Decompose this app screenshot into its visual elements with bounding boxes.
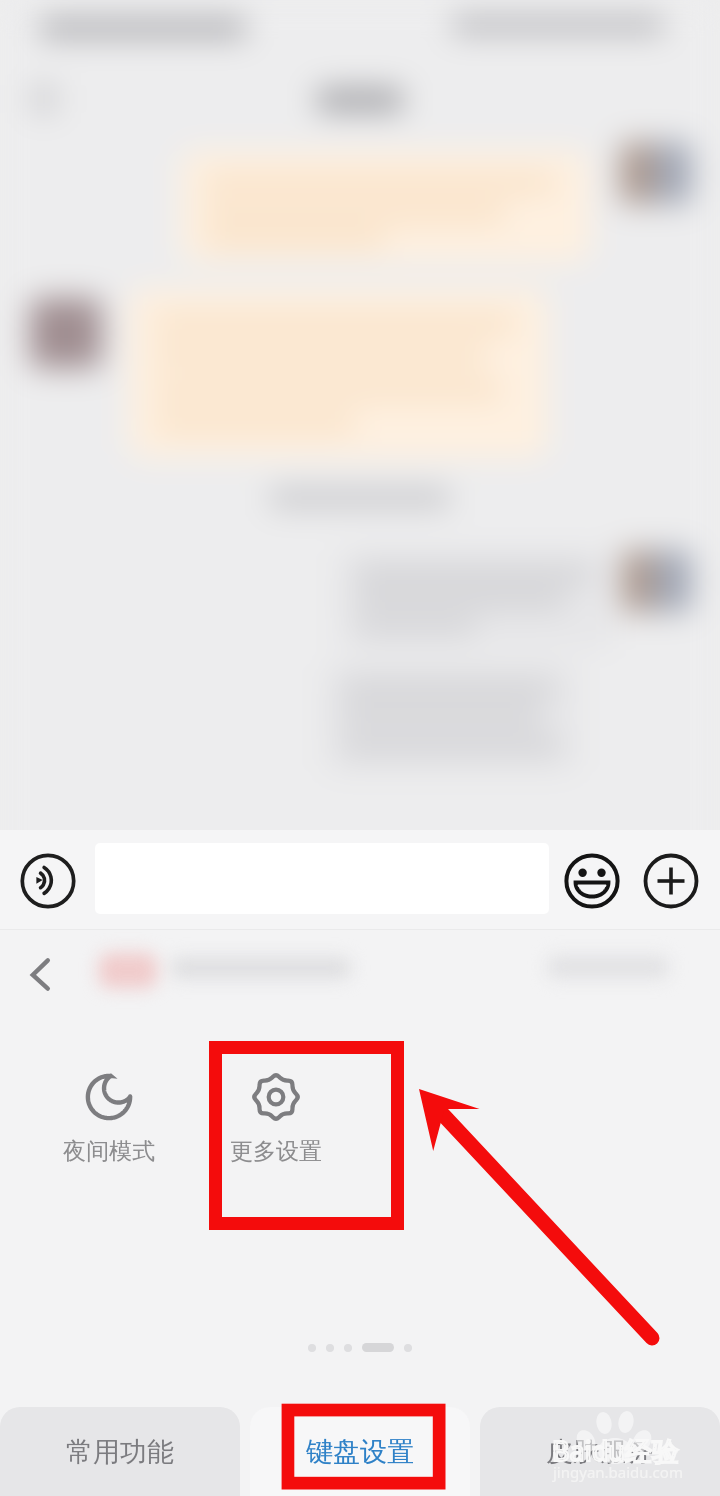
button[interactable]: 夜间模式 xyxy=(25,1020,192,1317)
button[interactable]: 键盘设置 xyxy=(250,1407,470,1496)
button[interactable]: Voice input xyxy=(22,855,74,907)
button[interactable]: 常用功能 xyxy=(0,1407,240,1496)
button[interactable]: 更多设置 xyxy=(192,1020,360,1317)
staticText: Baidu经验 xyxy=(552,1432,679,1469)
staticText: 夜间模式 xyxy=(63,1137,155,1166)
button[interactable]: Emoji xyxy=(566,855,618,907)
staticText: 常用功能 xyxy=(66,1435,174,1469)
staticText: 更多设置 xyxy=(230,1137,322,1166)
staticText: 键盘设置 xyxy=(306,1435,414,1469)
button[interactable]: 皮肤服务 xyxy=(480,1407,720,1496)
staticText: jingyan.baidu.com xyxy=(553,1462,683,1482)
button[interactable]: Back xyxy=(10,945,70,1005)
staticText: 皮肤服务 xyxy=(546,1435,654,1469)
button[interactable]: More options xyxy=(645,855,697,907)
